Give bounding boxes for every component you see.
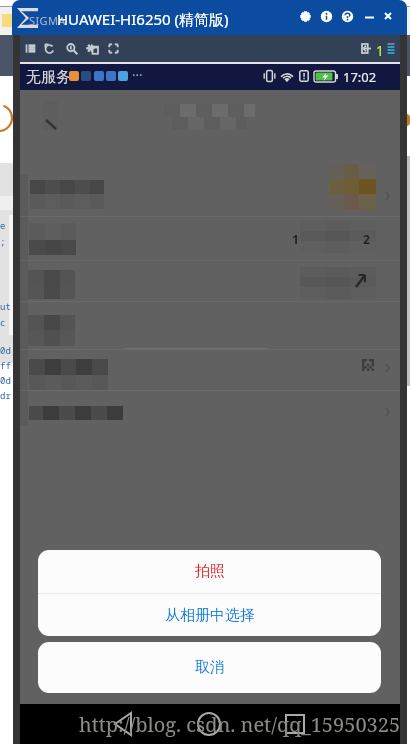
staticText: 从相册中选择 (165, 606, 255, 625)
staticText: 0d ff 0d dr (0, 344, 11, 401)
button[interactable]: List (25, 43, 36, 54)
button[interactable]: Home (192, 707, 226, 741)
button[interactable]: Rotate (44, 43, 55, 54)
button[interactable]: Settings (300, 11, 311, 22)
staticText: HUAWEI-HI6250 (精简版) (57, 9, 229, 29)
button[interactable]: Fullscreen (108, 43, 119, 54)
button[interactable]: Recents (278, 707, 312, 741)
staticText: ut c (0, 300, 11, 328)
button[interactable]: Export (361, 42, 372, 55)
button[interactable]: Info (320, 10, 333, 23)
staticText: 2 (363, 231, 370, 247)
button[interactable]: Close (382, 10, 394, 22)
button[interactable]: Back (107, 707, 141, 741)
staticText: SIGMA (29, 13, 66, 28)
staticText: 取消 (195, 658, 225, 677)
button[interactable]: Minimize (363, 10, 376, 23)
staticText: 1 (376, 41, 385, 60)
staticText: ··· (132, 66, 143, 84)
button[interactable]: Help (341, 10, 354, 23)
staticText: 17:02 (343, 68, 377, 86)
staticText: e ; (0, 219, 6, 247)
button[interactable]: 拍照 (38, 550, 381, 593)
button[interactable]: Zoom (66, 43, 77, 54)
staticText: 无服务 (26, 68, 71, 87)
staticText: http://blog. csdn. net/qq_15950325 (79, 711, 401, 738)
button[interactable]: Screenshot (86, 43, 99, 56)
button[interactable]: Menu (387, 43, 395, 55)
staticText: 1 (292, 231, 299, 247)
staticText: 拍照 (195, 562, 225, 581)
button[interactable]: 取消 (38, 642, 381, 693)
button[interactable]: 从相册中选择 (38, 594, 381, 636)
